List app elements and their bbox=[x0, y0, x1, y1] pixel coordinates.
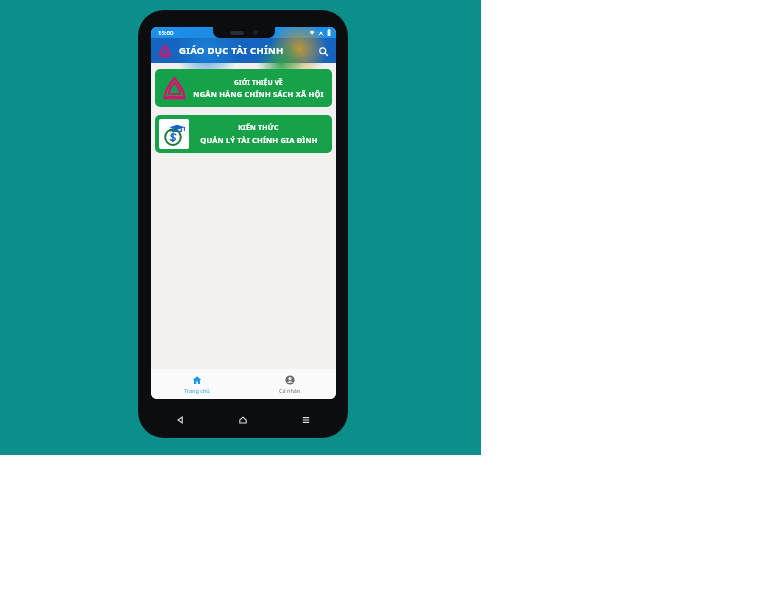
button[interactable]: Search bbox=[314, 42, 332, 60]
button[interactable]: Recent apps bbox=[298, 412, 314, 428]
staticText: 15:00 bbox=[158, 29, 174, 37]
staticText: KIẾN THỨC bbox=[238, 123, 279, 133]
staticText: GIỚI THIỆU VỀ bbox=[234, 78, 283, 87]
staticText: GIÁO DỤC TÀI CHÍNH bbox=[179, 44, 284, 57]
staticText: Cá nhân bbox=[279, 387, 301, 394]
button[interactable]: Home bbox=[235, 412, 251, 428]
button[interactable]: KIẾN THỨC bbox=[155, 115, 332, 153]
button[interactable]: Back bbox=[172, 412, 188, 428]
staticText: NGÂN HÀNG CHÍNH SÁCH XÃ HỘI bbox=[193, 89, 324, 99]
button[interactable]: Trang chủ bbox=[151, 369, 243, 399]
button[interactable]: Cá nhân bbox=[243, 369, 336, 399]
staticText: Trang chủ bbox=[184, 387, 210, 394]
staticText: QUẢN LÝ TÀI CHÍNH GIA ĐÌNH bbox=[200, 135, 318, 145]
button[interactable]: Logo VBSP bbox=[155, 41, 174, 60]
button[interactable]: GIỚI THIỆU VỀ bbox=[155, 69, 332, 107]
